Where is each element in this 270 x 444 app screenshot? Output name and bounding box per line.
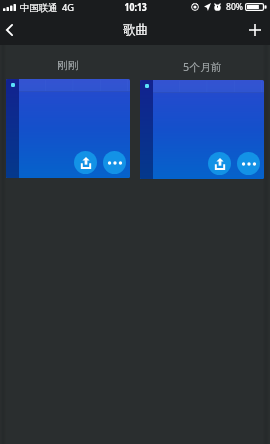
staticText: 中国联通 — [20, 2, 58, 14]
staticText: 4G — [62, 1, 75, 14]
button[interactable]: Share — [140, 80, 264, 179]
staticText: 刚刚 — [57, 59, 79, 73]
button[interactable]: Share — [74, 151, 97, 174]
staticText: 10:13 — [124, 0, 147, 14]
button[interactable]: More options — [237, 152, 260, 175]
button[interactable]: Add — [240, 15, 270, 45]
button[interactable]: Back — [0, 15, 26, 45]
button[interactable]: More options — [103, 151, 126, 174]
staticText: 80% — [226, 1, 243, 13]
staticText: 5个月前 — [183, 59, 222, 74]
button[interactable]: Share — [6, 79, 130, 178]
staticText: 歌曲 — [123, 22, 148, 38]
button[interactable]: Share — [208, 152, 231, 175]
